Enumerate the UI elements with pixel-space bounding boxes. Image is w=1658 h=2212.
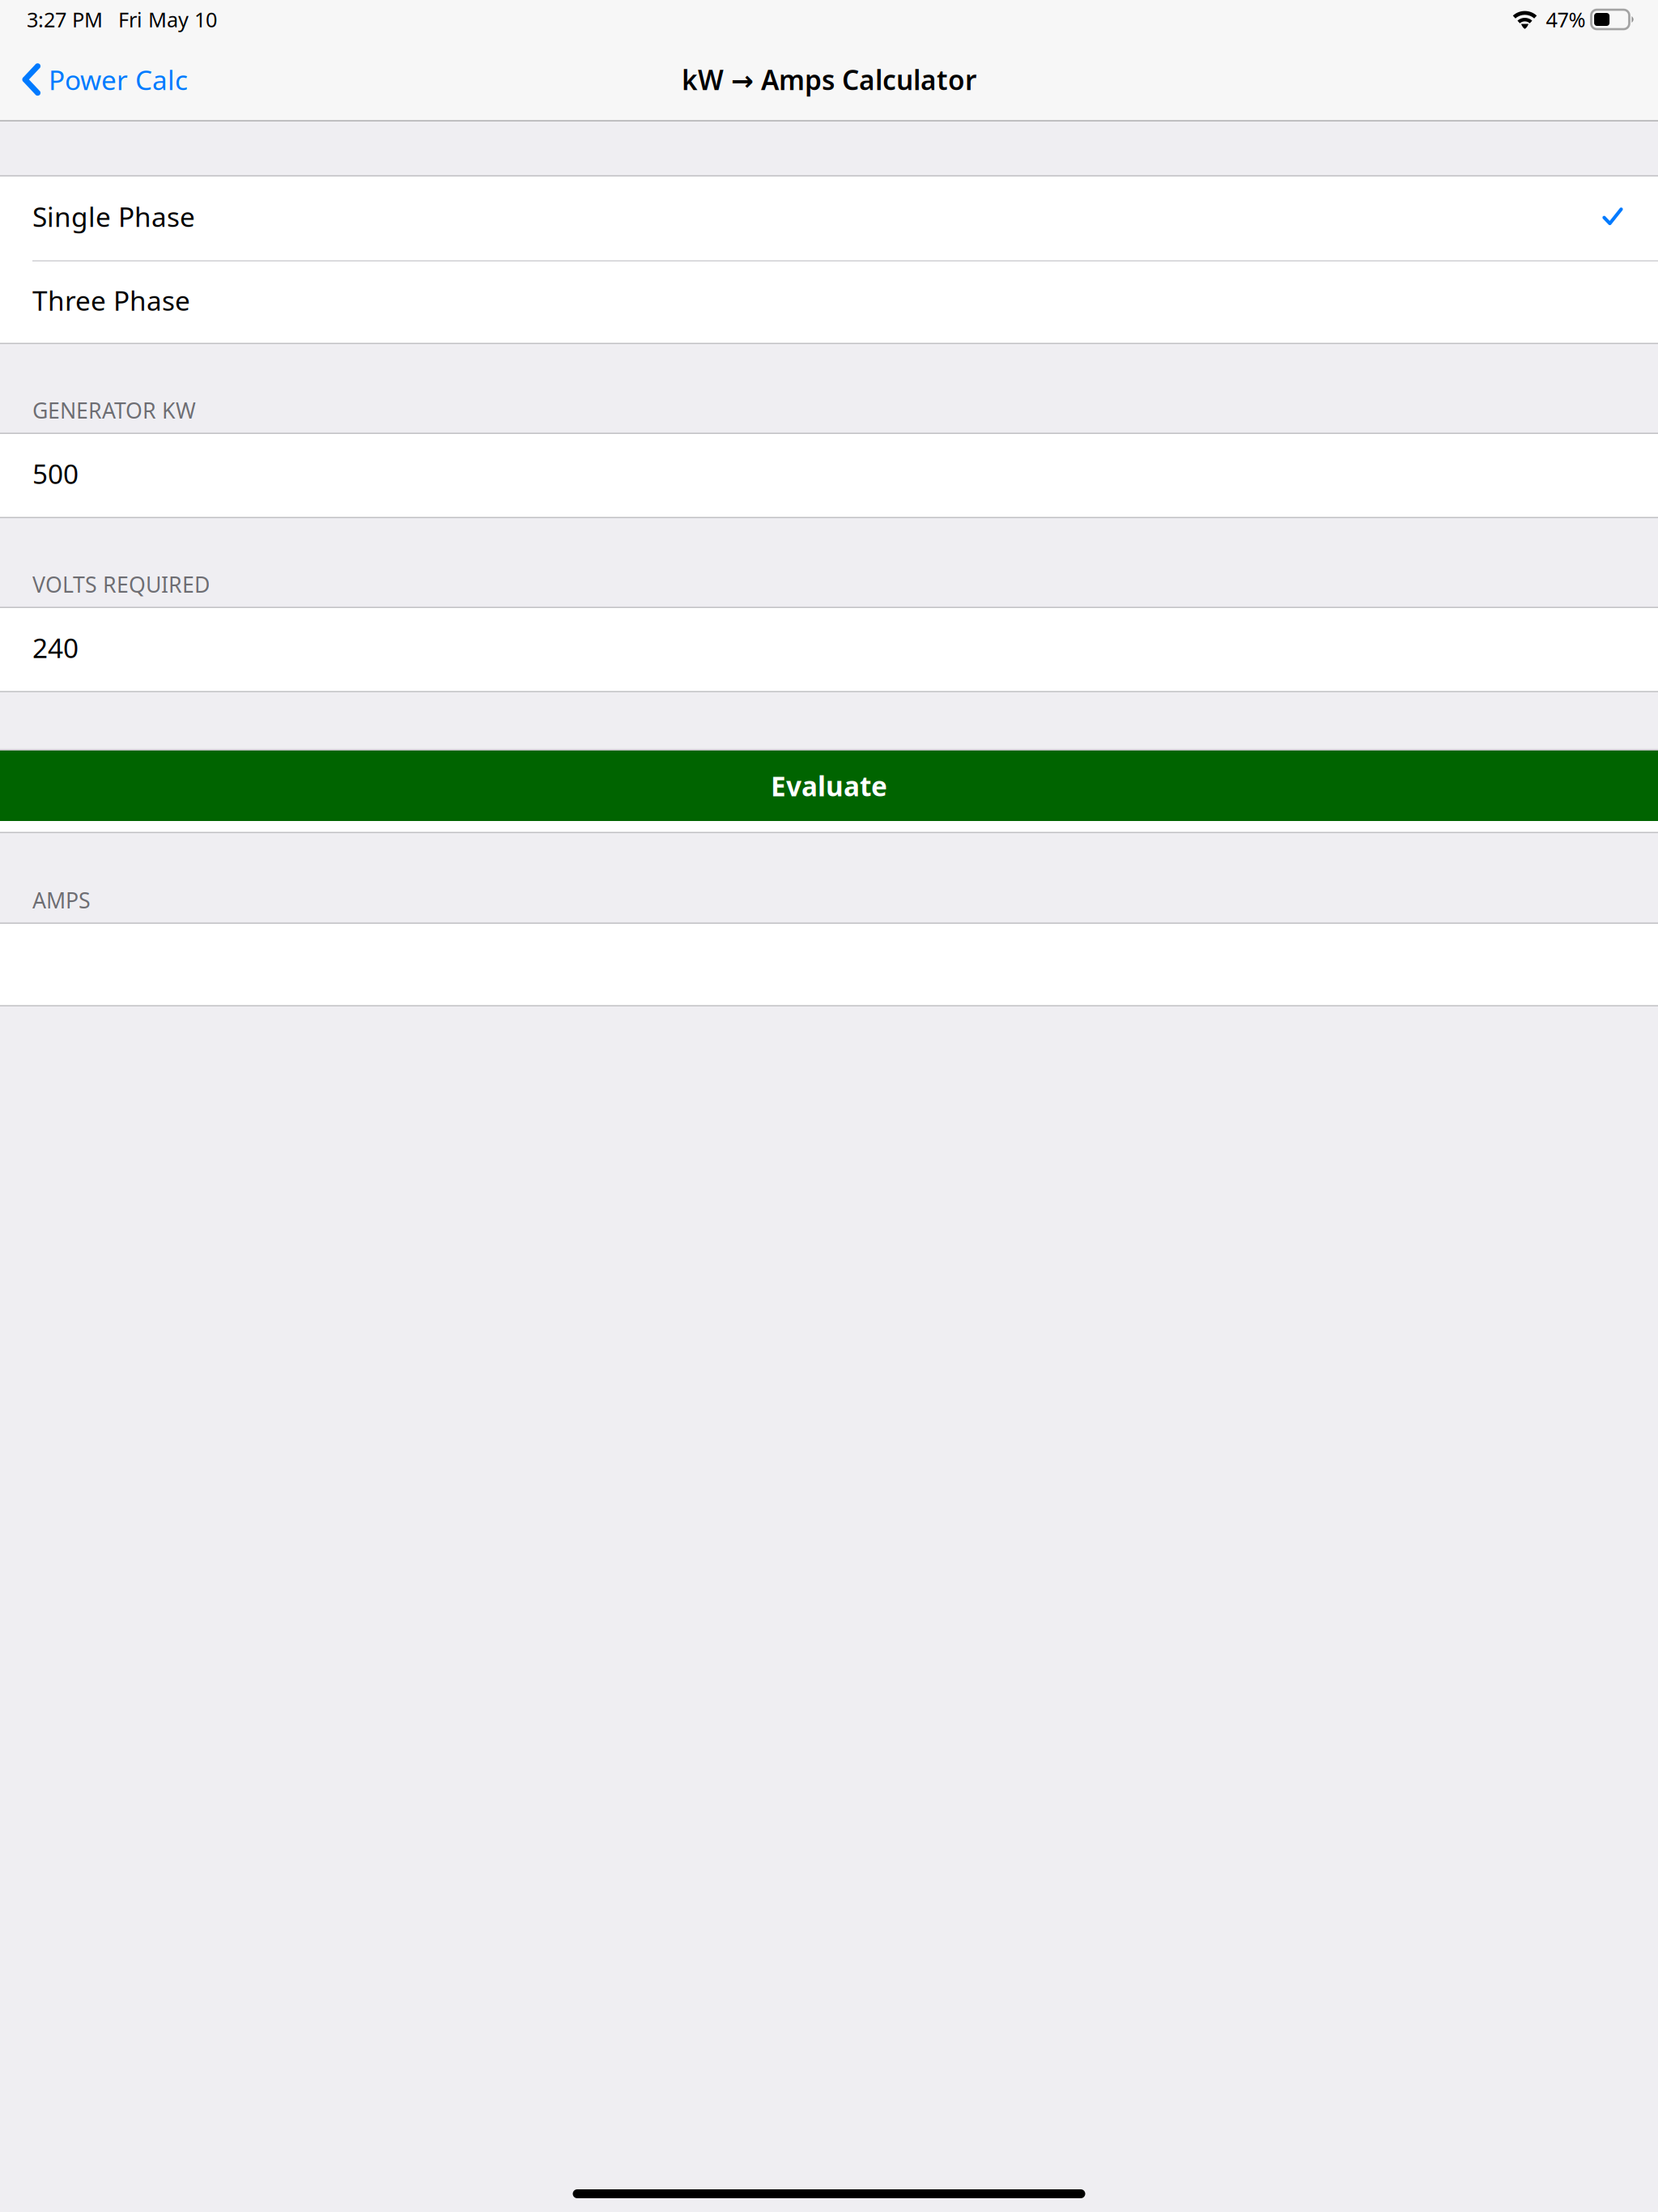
staticText: 3:27 PM [27,6,103,33]
staticText: 47% [1546,6,1586,33]
staticText: Evaluate [771,768,887,804]
staticText: Fri May 10 [118,6,217,33]
staticText: 240 [32,630,79,665]
staticText: Single Phase [32,198,195,234]
staticText: GENERATOR KW [32,396,196,425]
button[interactable]: Power Calc [0,39,201,120]
staticText: Three Phase [32,282,190,318]
staticText: 500 [32,456,79,491]
button[interactable]: Single Phase [0,177,1658,262]
staticText: VOLTS REQUIRED [32,570,210,599]
button[interactable]: Three Phase [0,262,1658,344]
button[interactable]: 500 [0,434,1658,518]
button[interactable] [0,924,1658,1006]
staticText: AMPS [32,886,91,914]
button[interactable]: 240 [0,608,1658,692]
staticText: Power Calc [49,62,188,97]
staticText: kW → Amps Calculator [682,62,976,97]
button[interactable]: Evaluate [0,751,1658,821]
